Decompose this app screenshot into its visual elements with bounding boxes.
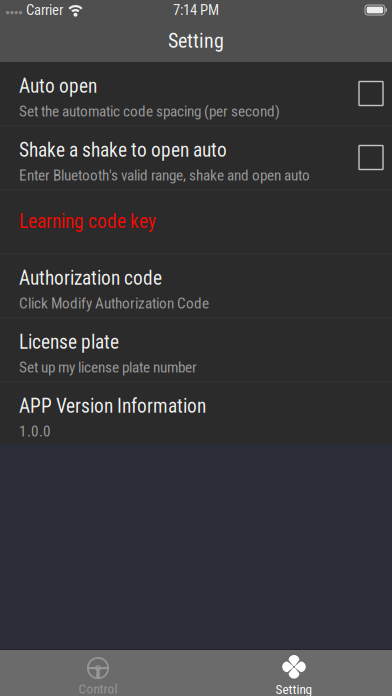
staticText: Set the automatic code spacing (per seco… (19, 102, 280, 120)
button[interactable]: APP Version Information (0, 382, 392, 445)
staticText: Learning code key (19, 210, 156, 233)
staticText: License plate (19, 331, 119, 353)
staticText: Control (78, 681, 117, 696)
staticText: Shake a shake to open auto (19, 139, 227, 161)
staticText: Click Modify Authorization Code (19, 294, 209, 312)
staticText: Setting (168, 29, 224, 53)
button[interactable]: Setting (196, 649, 392, 696)
button[interactable]: License plate (0, 318, 392, 381)
staticText: Setting (275, 682, 312, 696)
staticText: Enter Bluetooth's valid range, shake and… (19, 166, 310, 184)
staticText: 1.0.0 (19, 422, 51, 440)
button[interactable]: Learning code key (0, 190, 392, 253)
staticText: 7:14 PM (173, 1, 219, 19)
staticText: APP Version Information (19, 395, 206, 417)
button[interactable]: Control (0, 649, 196, 696)
staticText: Carrier (26, 1, 63, 19)
staticText: Auto open (19, 75, 97, 97)
button[interactable]: Authorization code (0, 254, 392, 317)
button[interactable]: Auto open (0, 62, 392, 125)
staticText: Set up my license plate number (19, 358, 197, 376)
staticText: Authorization code (19, 267, 162, 289)
button[interactable]: Shake a shake to open auto (0, 126, 392, 189)
